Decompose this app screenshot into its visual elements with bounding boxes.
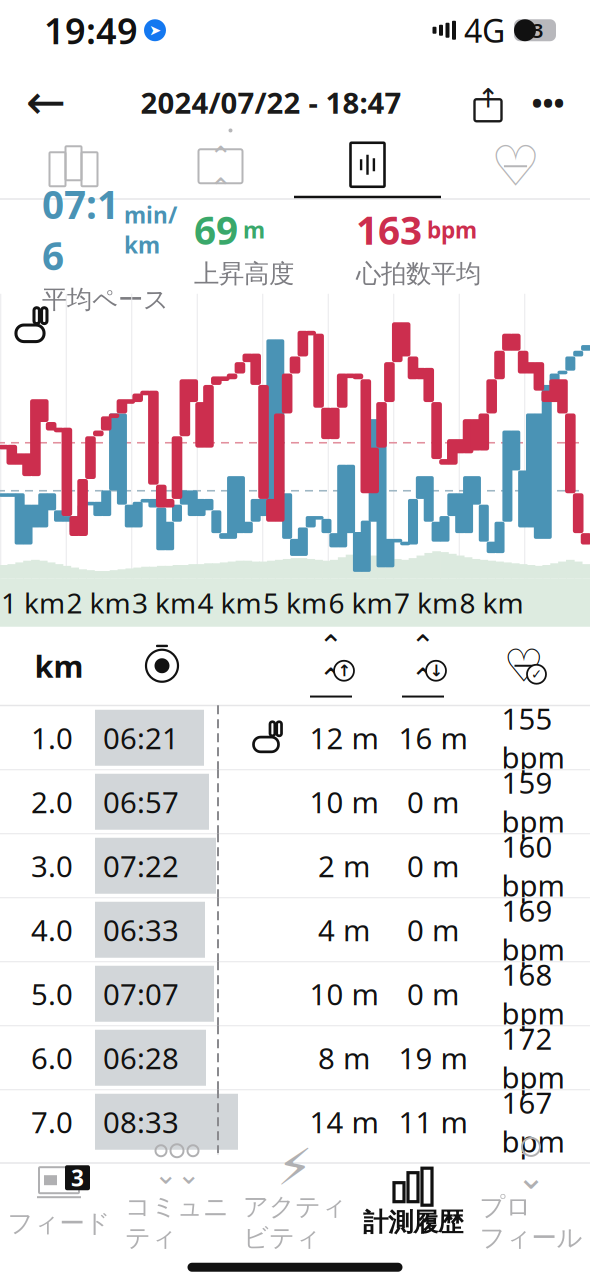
button[interactable]: ⚡︎ [236, 1164, 354, 1238]
staticText: 168 bpm [501, 955, 564, 1033]
button[interactable]: Heart rate [441, 134, 590, 198]
staticText: 8 km [459, 584, 523, 621]
staticText: 169 bpm [501, 891, 564, 969]
button[interactable]: Back [10, 73, 82, 131]
button[interactable]: Map [0, 134, 147, 198]
button[interactable]: 3.0 [0, 834, 590, 898]
staticText: 4 km [197, 584, 261, 621]
staticText: 1 km [1, 584, 65, 621]
staticText: ••• [531, 83, 564, 122]
staticText: 2.0 [31, 782, 73, 821]
staticText: 10 m [309, 974, 378, 1013]
staticText: ➤ [149, 22, 161, 38]
staticText: 07:07 [103, 974, 179, 1013]
staticText: 2 km [66, 584, 130, 621]
staticText: フィード [7, 1208, 110, 1239]
staticText: 08:33 [103, 1102, 179, 1141]
staticText: 3.0 [31, 846, 73, 885]
staticText: 1.0 [31, 718, 73, 757]
button[interactable]: ⌄⌄ [118, 1164, 236, 1238]
staticText: 10 m [309, 782, 378, 821]
button[interactable]: 4.0 [0, 898, 590, 962]
staticText: 上昇高度 [194, 258, 294, 289]
staticText: 6 km [328, 584, 392, 621]
button[interactable]: Photos [147, 134, 294, 198]
button[interactable]: 2.0 [0, 770, 590, 834]
staticText: ⌄⌄ [154, 1158, 200, 1190]
button[interactable]: 3 [0, 1164, 118, 1238]
staticText: m [243, 215, 265, 245]
staticText: 8 m [318, 1038, 370, 1077]
staticText: 12 m [309, 718, 378, 757]
staticText: 0 m [407, 782, 459, 821]
button[interactable]: 7.0 [0, 1090, 590, 1154]
staticText: 0 m [407, 974, 459, 1013]
staticText: 14 m [309, 1102, 378, 1141]
staticText: bpm [427, 215, 477, 245]
staticText: ⚡︎ [277, 1138, 313, 1196]
staticText: min/km [124, 200, 177, 260]
staticText: 計測履歴 [363, 1207, 463, 1238]
staticText: 7 km [394, 584, 458, 621]
staticText: 155 bpm [501, 699, 564, 777]
staticText: 16 m [398, 718, 467, 757]
staticText: 4 m [318, 910, 370, 949]
staticText: 心拍数平均 [356, 258, 481, 289]
staticText: 5.0 [31, 974, 73, 1013]
button[interactable]: Splits chart [294, 134, 441, 198]
staticText: 06:28 [103, 1038, 179, 1077]
staticText: コミュニティ [125, 1191, 229, 1253]
button[interactable]: 1.0 [0, 706, 590, 770]
staticText: 07:22 [103, 846, 179, 885]
staticText: 4.0 [31, 910, 73, 949]
staticText: 2024/07/22 - 18:47 [140, 83, 401, 122]
staticText: 07:16 [42, 178, 119, 281]
button[interactable]: Share [460, 73, 516, 131]
button[interactable]: 5.0 [0, 962, 590, 1026]
staticText: ⌃⌃ [209, 140, 232, 204]
staticText: ↑ [477, 83, 499, 113]
staticText: ← [26, 75, 66, 129]
button[interactable]: More options [516, 73, 580, 131]
staticText: 33 [521, 17, 543, 44]
staticText: 163 [356, 204, 422, 255]
staticText: アクティビティ [243, 1191, 347, 1253]
staticText: プロフィール [479, 1191, 582, 1253]
button[interactable]: ⌄ [472, 1164, 590, 1238]
staticText: 6.0 [31, 1038, 73, 1077]
staticText: ♡ [503, 640, 544, 691]
staticText: 3 km [132, 584, 196, 621]
button[interactable]: 6.0 [0, 1026, 590, 1090]
staticText: ⌃⌃ [410, 629, 435, 696]
staticText: 5 km [263, 584, 327, 621]
staticText: ✓ [531, 667, 542, 682]
staticText: 69 [194, 204, 238, 255]
staticText: 0 m [407, 910, 459, 949]
staticText: km [34, 645, 83, 686]
staticText: 0 m [407, 846, 459, 885]
staticText: ♡ [490, 134, 540, 198]
staticText: 3 [71, 1163, 84, 1193]
staticText: 19:49 [44, 6, 138, 54]
staticText: 06:33 [103, 910, 179, 949]
staticText: 4G [464, 9, 505, 51]
staticText: 06:21 [103, 718, 179, 757]
staticText: ⌃⌃ [318, 629, 343, 696]
staticText: 06:57 [103, 782, 179, 821]
staticText: 167 bpm [501, 1083, 564, 1161]
staticText: ⌄ [516, 1157, 545, 1196]
button[interactable]: 計測履歴 [354, 1164, 472, 1238]
staticText: 160 bpm [501, 827, 564, 905]
staticText: 平均ペース [42, 284, 169, 315]
staticText: ↓ [429, 662, 442, 680]
staticText: 11 m [398, 1102, 467, 1141]
staticText: 159 bpm [501, 763, 564, 841]
staticText: 172 bpm [501, 1019, 564, 1097]
staticText: 2 m [318, 846, 370, 885]
staticText: 7.0 [31, 1102, 73, 1141]
staticText: 19 m [398, 1038, 467, 1077]
staticText: ↑ [337, 662, 350, 680]
